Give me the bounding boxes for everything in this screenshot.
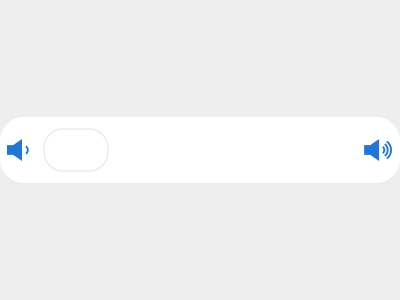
button[interactable]: Volume bbox=[0, 117, 400, 183]
button[interactable]: Minimum volume bbox=[0, 128, 30, 172]
button[interactable]: Maximum volume bbox=[364, 128, 400, 172]
